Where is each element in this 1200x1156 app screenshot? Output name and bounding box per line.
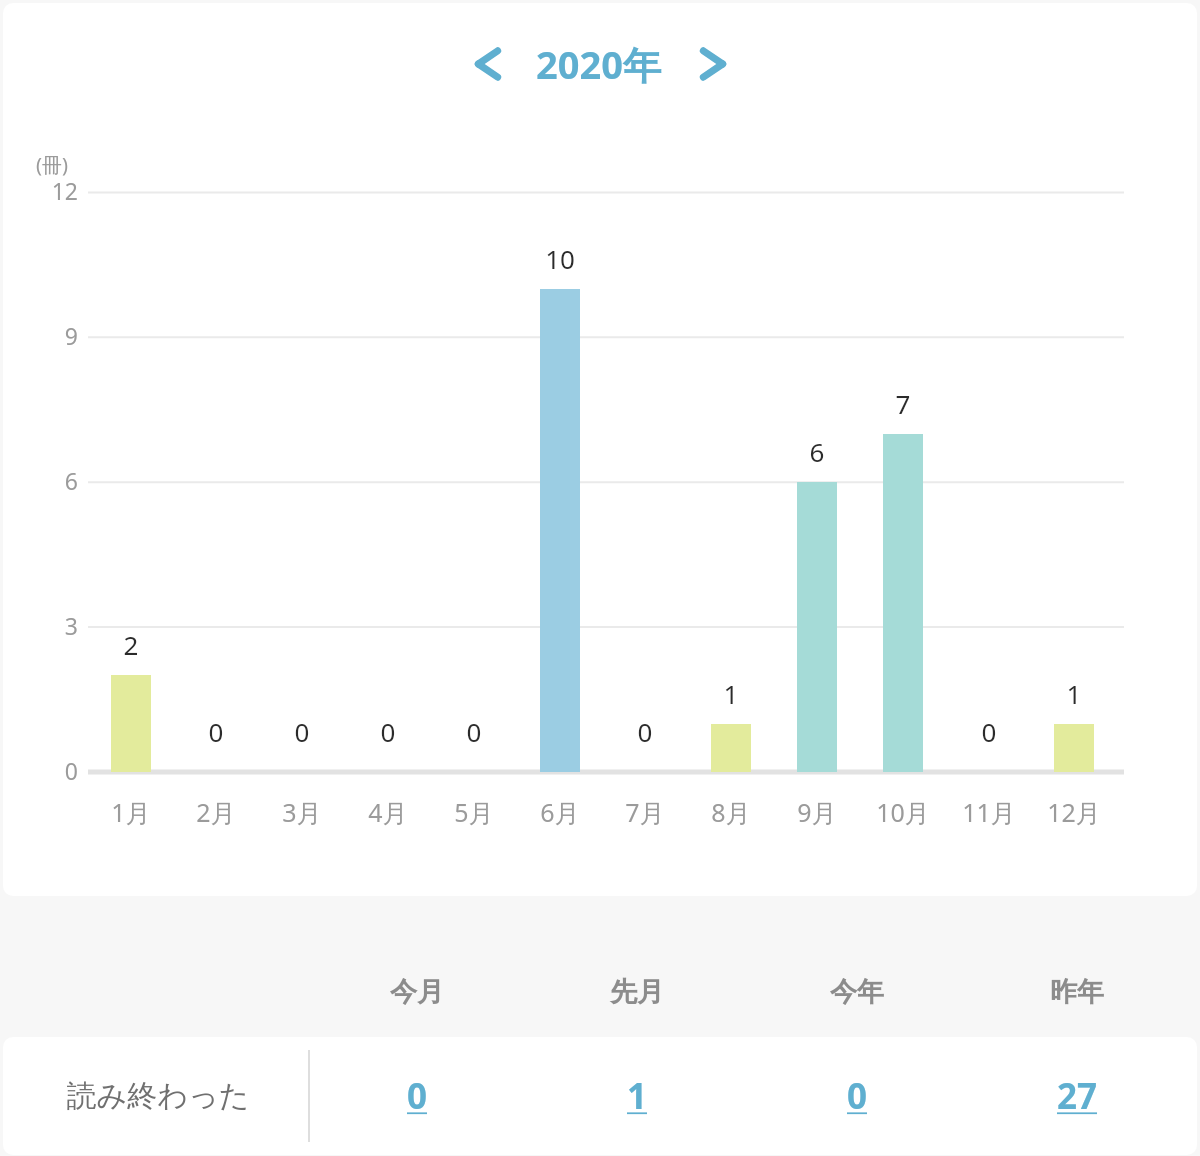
staticText: 5月 [424,795,524,829]
staticText: 0 [944,714,1034,749]
staticText: 0 [429,714,519,749]
staticText: 0 [26,755,78,786]
staticText: 12 [26,175,78,206]
staticText: 6 [772,434,862,469]
button[interactable]: 0 [787,1037,927,1155]
staticText: 12月 [1024,795,1124,829]
staticText: 27 [1007,1072,1147,1120]
button[interactable]: Previous year [456,32,520,96]
staticText: 1 [686,676,776,711]
staticText: 10月 [853,795,953,829]
staticText: 2 [86,627,176,662]
staticText: 11月 [939,795,1039,829]
staticText: 0 [343,714,433,749]
button[interactable]: 2020年 [536,38,661,90]
staticText: 2月 [166,795,266,829]
staticText: 3月 [252,795,352,829]
staticText: 0 [257,714,347,749]
staticText: 7月 [595,795,695,829]
button[interactable]: 27 [1007,1037,1147,1155]
staticText: 9 [26,320,78,351]
staticText: 先月 [567,975,707,1009]
staticText: 1 [1029,676,1119,711]
staticText: 10 [515,241,605,276]
staticText: 1 [567,1072,707,1120]
staticText: 読み終わった [23,1077,293,1115]
staticText: 3 [26,610,78,641]
staticText: 昨年 [1007,975,1147,1009]
staticText: 今月 [347,975,487,1009]
staticText: 6月 [510,795,610,829]
staticText: 6 [26,465,78,496]
staticText: 0 [600,714,690,749]
staticText: 1月 [81,795,181,829]
staticText: (冊) [36,151,68,178]
staticText: 7 [858,386,948,421]
staticText: 9月 [767,795,867,829]
button[interactable]: 0 [347,1037,487,1155]
button[interactable]: Next year [681,32,745,96]
staticText: 0 [787,1072,927,1120]
button[interactable]: 1 [567,1037,707,1155]
staticText: 0 [171,714,261,749]
staticText: 4月 [338,795,438,829]
staticText: 2020年 [536,38,661,90]
staticText: 今年 [787,975,927,1009]
staticText: 0 [347,1072,487,1120]
staticText: 8月 [681,795,781,829]
